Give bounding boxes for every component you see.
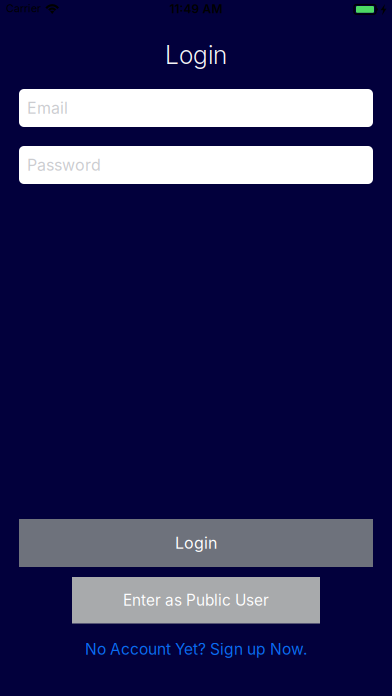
button[interactable]: Enter as Public User — [72, 577, 320, 623]
staticText: Password — [27, 155, 101, 175]
staticText: Login — [165, 40, 227, 70]
staticText: 11:49 AM — [169, 2, 222, 16]
button[interactable]: Login — [19, 519, 373, 567]
button[interactable]: No Account Yet? Sign up Now. — [0, 636, 392, 662]
staticText: No Account Yet? Sign up Now. — [85, 640, 307, 658]
button[interactable]: Password — [19, 146, 373, 184]
staticText: Login — [175, 533, 217, 553]
staticText: Carrier — [6, 2, 41, 15]
staticText: Email — [27, 98, 68, 118]
staticText: Enter as Public User — [123, 591, 269, 610]
button[interactable]: Email — [19, 89, 373, 127]
